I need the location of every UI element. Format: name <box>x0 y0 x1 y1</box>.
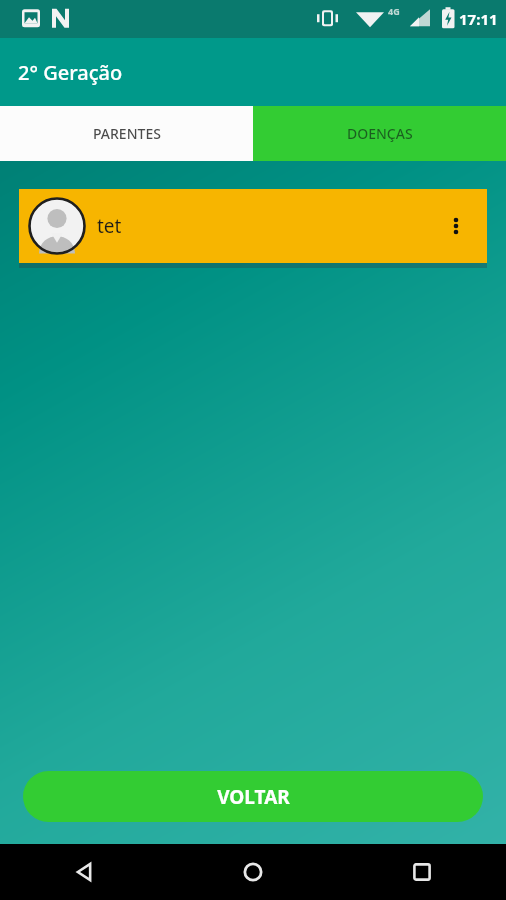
button[interactable]: PARENTES <box>0 106 253 161</box>
button[interactable]: tet <box>19 189 487 263</box>
staticText: PARENTES <box>93 124 161 143</box>
staticText: VOLTAR <box>217 784 290 810</box>
staticText: 17:11 <box>459 9 498 29</box>
staticText: tet <box>97 213 122 239</box>
staticText: 2° Geração <box>18 59 123 86</box>
button[interactable]: Recent apps <box>337 844 506 900</box>
button[interactable]: DOENÇAS <box>253 106 506 161</box>
button[interactable]: More options <box>437 207 475 245</box>
button[interactable]: Back <box>0 844 168 900</box>
staticText: 4G <box>388 5 400 17</box>
button[interactable]: Home <box>168 844 337 900</box>
staticText: DOENÇAS <box>347 124 413 143</box>
button[interactable]: VOLTAR <box>23 771 483 822</box>
